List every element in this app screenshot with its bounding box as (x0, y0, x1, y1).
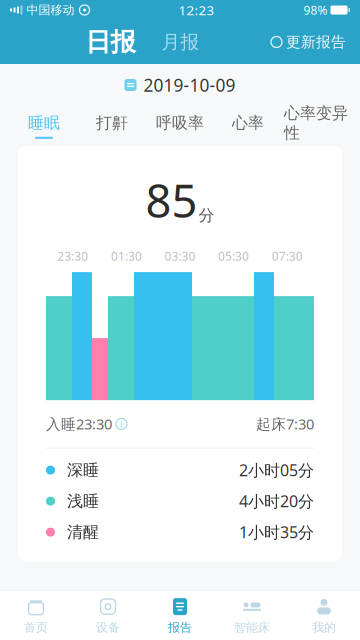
staticText: 深睡 (67, 460, 99, 480)
button[interactable]: 打鼾 (78, 113, 146, 139)
staticText: 更新报告 (286, 33, 346, 51)
button[interactable]: 睡眠说明 (116, 418, 127, 430)
staticText: 报告 (168, 620, 192, 635)
staticText: 23:30 (57, 248, 88, 264)
button[interactable]: 呼吸率 (146, 113, 214, 139)
staticText: 98% (303, 2, 327, 18)
button[interactable]: 2019-10-09 (124, 65, 235, 104)
staticText: 设备 (96, 620, 120, 635)
staticText: 1小时35分 (239, 521, 314, 543)
button[interactable]: 报告 (144, 591, 216, 640)
staticText: 12:23 (178, 1, 214, 19)
button[interactable]: 心率变异性 (282, 103, 350, 149)
button[interactable]: 日报 (85, 26, 135, 57)
staticText: 首页 (24, 620, 48, 635)
button[interactable]: 首页 (0, 591, 72, 640)
button[interactable]: 智能床 (216, 591, 288, 640)
staticText: 分 (198, 205, 214, 225)
button[interactable]: 心率 (214, 113, 282, 139)
staticText: 85 (145, 170, 197, 230)
staticText: 4小时20分 (239, 490, 314, 512)
button[interactable]: 我的 (288, 591, 360, 640)
staticText: 心率 (232, 113, 264, 133)
staticText: 中国移动 (26, 3, 74, 17)
staticText: 2019-10-09 (143, 73, 235, 96)
staticText: 入睡23:30 (46, 414, 112, 434)
staticText: 03:30 (164, 248, 195, 264)
button[interactable]: 月报 (135, 30, 199, 53)
staticText: 打鼾 (96, 113, 128, 133)
staticText: 清醒 (67, 522, 99, 542)
staticText: i (120, 418, 122, 430)
staticText: 2小时05分 (239, 459, 314, 481)
staticText: 05:30 (218, 248, 249, 264)
staticText: 01:30 (111, 248, 142, 264)
staticText: 我的 (312, 620, 336, 635)
staticText: 心率变异性 (284, 103, 348, 143)
button[interactable]: 睡眠 (10, 113, 78, 139)
staticText: 浅睡 (67, 491, 99, 511)
staticText: 日报 (85, 26, 135, 57)
staticText: 起床7:30 (256, 414, 314, 434)
button[interactable]: 更新报告 (271, 33, 346, 51)
button[interactable]: 设备 (72, 591, 144, 640)
staticText: 07:30 (272, 248, 303, 264)
staticText: 智能床 (234, 620, 270, 635)
staticText: 睡眠 (28, 113, 60, 133)
staticText: 呼吸率 (156, 113, 204, 133)
staticText: 月报 (161, 30, 199, 53)
